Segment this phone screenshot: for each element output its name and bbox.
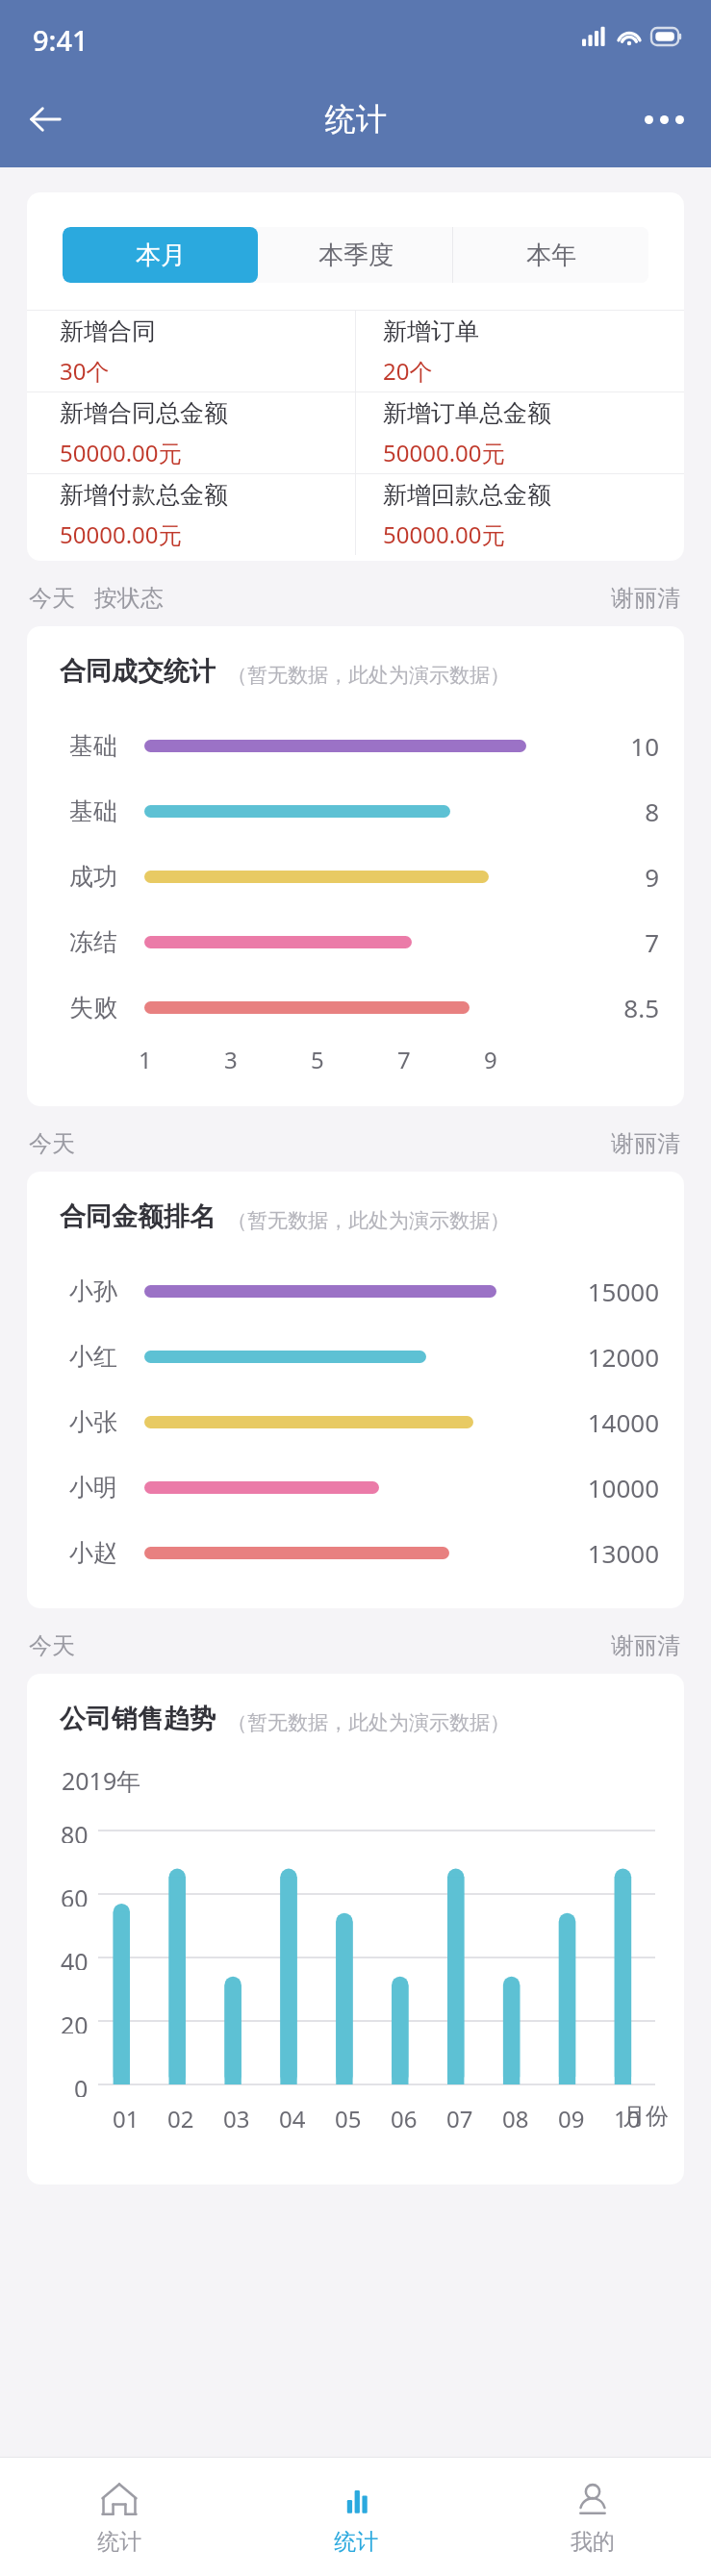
staticText: 1 bbox=[139, 1044, 152, 1075]
staticText: 新增合同总金额 bbox=[60, 398, 228, 428]
button[interactable]: 公司销售趋势 bbox=[27, 1674, 684, 2185]
staticText: 成功 bbox=[69, 862, 133, 892]
staticText: 小红 bbox=[69, 1342, 133, 1372]
staticText: 合同金额排名 bbox=[60, 1200, 216, 1233]
staticText: 9:41 bbox=[33, 21, 89, 59]
staticText: 80 bbox=[61, 1818, 89, 1843]
staticText: 15000 bbox=[544, 1275, 659, 1308]
button[interactable]: 谢丽清 bbox=[611, 1129, 680, 1158]
button[interactable]: 今天 bbox=[29, 1631, 75, 1660]
button[interactable]: 今天 bbox=[29, 584, 75, 613]
button[interactable]: 统计 bbox=[0, 2458, 238, 2576]
staticText: 小明 bbox=[69, 1473, 133, 1503]
staticText: 月份 bbox=[622, 2102, 669, 2131]
button[interactable]: 新增付款总金额 bbox=[27, 474, 355, 555]
staticText: 02 bbox=[167, 2103, 194, 2134]
staticText: 8 bbox=[576, 795, 659, 828]
button[interactable]: 合同金额排名 bbox=[27, 1172, 684, 1608]
button[interactable]: 新增合同 bbox=[27, 311, 355, 391]
staticText: 合同成交统计 bbox=[60, 655, 216, 688]
staticText: 10 bbox=[576, 729, 659, 763]
staticText: 30个 bbox=[60, 355, 110, 387]
staticText: 今天 bbox=[29, 584, 75, 613]
staticText: 05 bbox=[335, 2103, 362, 2134]
staticText: 3 bbox=[224, 1044, 238, 1075]
staticText: 本月 bbox=[136, 240, 186, 271]
staticText: 10000 bbox=[544, 1471, 659, 1504]
staticText: 统计 bbox=[334, 2528, 378, 2556]
staticText: 8.5 bbox=[576, 991, 659, 1024]
staticText: 10 bbox=[614, 2103, 641, 2134]
staticText: 7 bbox=[397, 1044, 411, 1075]
staticText: 冻结 bbox=[69, 927, 133, 957]
staticText: 今天 bbox=[29, 1129, 75, 1158]
button[interactable]: 本月 bbox=[63, 227, 258, 283]
staticText: 06 bbox=[391, 2103, 418, 2134]
staticText: （暂无数据，此处为演示数据） bbox=[227, 1208, 510, 1233]
staticText: 本季度 bbox=[318, 240, 394, 271]
staticText: 5 bbox=[311, 1044, 324, 1075]
staticText: 01 bbox=[113, 2103, 140, 2134]
staticText: 50000.00元 bbox=[60, 518, 182, 550]
staticText: 20个 bbox=[383, 355, 433, 387]
staticText: 失败 bbox=[69, 993, 133, 1023]
staticText: 统计 bbox=[97, 2528, 141, 2556]
button[interactable]: 合同成交统计 bbox=[27, 626, 684, 1106]
staticText: （暂无数据，此处为演示数据） bbox=[227, 663, 510, 688]
staticText: 9 bbox=[484, 1044, 497, 1075]
staticText: 按状态 bbox=[94, 584, 164, 613]
button[interactable]: 本年 bbox=[453, 227, 648, 283]
staticText: 小张 bbox=[69, 1407, 133, 1437]
staticText: 2019年 bbox=[62, 1764, 141, 1797]
staticText: 12000 bbox=[544, 1340, 659, 1374]
staticText: 07 bbox=[446, 2103, 473, 2134]
staticText: 13000 bbox=[544, 1536, 659, 1570]
staticText: 今天 bbox=[29, 1631, 75, 1660]
staticText: 基础 bbox=[69, 796, 133, 826]
staticText: 新增订单 bbox=[383, 316, 479, 346]
button[interactable]: More options bbox=[634, 89, 694, 149]
button[interactable]: 本季度 bbox=[258, 227, 453, 283]
staticText: 小孙 bbox=[69, 1276, 133, 1306]
staticText: 本年 bbox=[526, 240, 576, 271]
staticText: 40 bbox=[61, 1945, 89, 1970]
button[interactable]: 统计 bbox=[238, 2458, 474, 2576]
staticText: 7 bbox=[576, 925, 659, 959]
staticText: 小赵 bbox=[69, 1538, 133, 1568]
button[interactable]: 按状态 bbox=[94, 584, 164, 613]
staticText: 50000.00元 bbox=[383, 518, 505, 550]
staticText: 我的 bbox=[571, 2528, 615, 2556]
staticText: （暂无数据，此处为演示数据） bbox=[227, 1710, 510, 1735]
button[interactable]: 新增订单 bbox=[356, 311, 684, 391]
staticText: 09 bbox=[558, 2103, 585, 2134]
staticText: 谢丽清 bbox=[611, 1129, 680, 1158]
staticText: 统计 bbox=[325, 100, 387, 139]
staticText: 50000.00元 bbox=[60, 437, 182, 468]
button[interactable]: 谢丽清 bbox=[611, 584, 680, 613]
staticText: 04 bbox=[279, 2103, 306, 2134]
staticText: 基础 bbox=[69, 731, 133, 761]
staticText: 9 bbox=[576, 860, 659, 894]
button[interactable]: Back bbox=[15, 89, 75, 149]
staticText: 新增回款总金额 bbox=[383, 480, 551, 510]
staticText: 08 bbox=[502, 2103, 529, 2134]
staticText: 谢丽清 bbox=[611, 584, 680, 613]
staticText: 20 bbox=[61, 2008, 89, 2033]
staticText: 新增付款总金额 bbox=[60, 480, 228, 510]
staticText: 0 bbox=[74, 2072, 89, 2097]
staticText: 14000 bbox=[544, 1405, 659, 1439]
button[interactable]: 谢丽清 bbox=[611, 1631, 680, 1660]
staticText: 公司销售趋势 bbox=[60, 1703, 216, 1735]
button[interactable]: 新增合同总金额 bbox=[27, 392, 355, 473]
staticText: 60 bbox=[61, 1881, 89, 1907]
button[interactable]: 新增回款总金额 bbox=[356, 474, 684, 555]
button[interactable]: 新增订单总金额 bbox=[356, 392, 684, 473]
staticText: 新增合同 bbox=[60, 316, 156, 346]
staticText: 谢丽清 bbox=[611, 1631, 680, 1660]
staticText: 50000.00元 bbox=[383, 437, 505, 468]
staticText: 03 bbox=[223, 2103, 250, 2134]
button[interactable]: 今天 bbox=[29, 1129, 75, 1158]
button[interactable]: 我的 bbox=[474, 2458, 711, 2576]
staticText: 新增订单总金额 bbox=[383, 398, 551, 428]
